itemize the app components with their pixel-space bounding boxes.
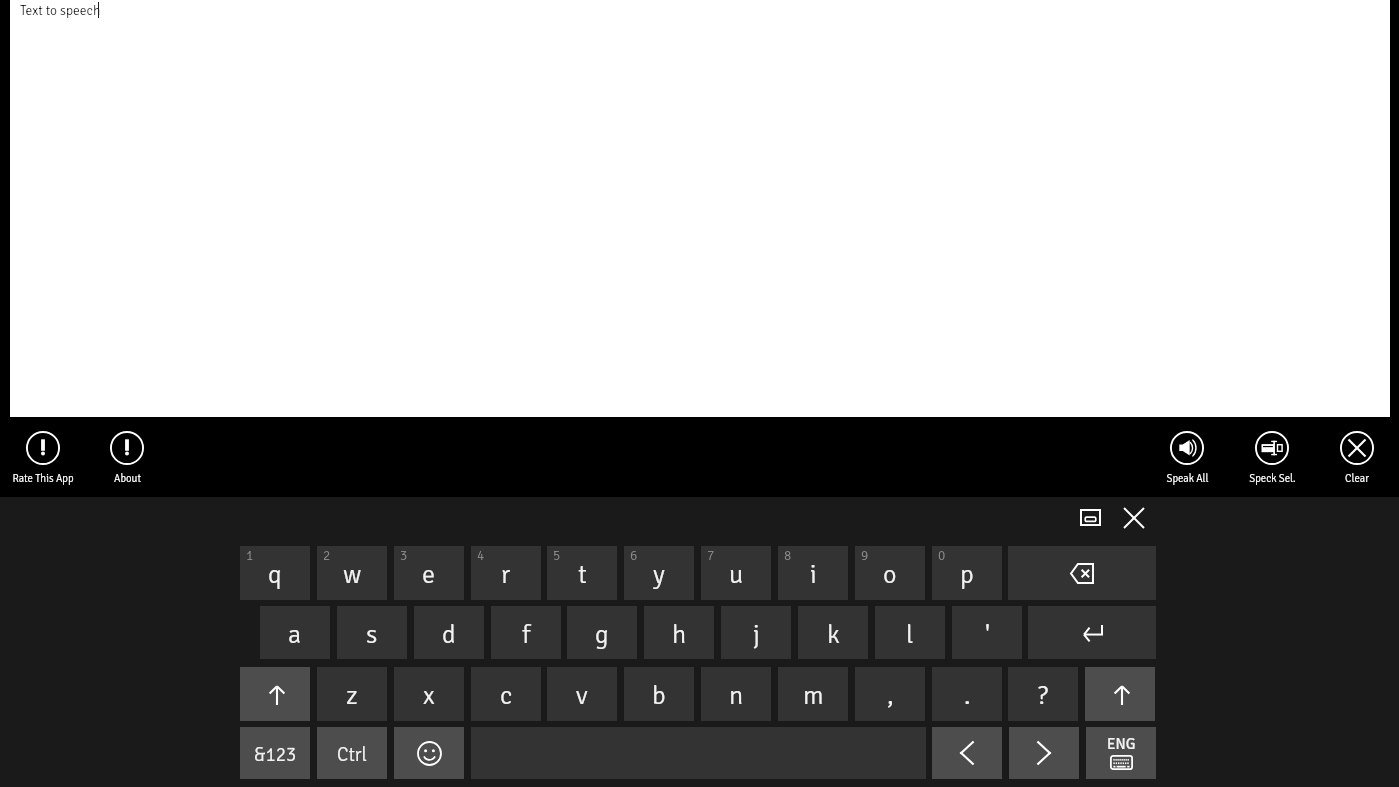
button[interactable]: &123 [240,727,310,779]
button[interactable]: s [337,606,407,659]
button[interactable]: z [317,667,387,721]
staticText: t [578,559,587,591]
button[interactable]: Backspace [1008,546,1156,600]
button[interactable]: Text to speech [10,0,1390,417]
staticText: y [653,559,665,591]
staticText: g [595,619,609,651]
staticText: s [366,619,378,651]
button[interactable]: . [932,667,1002,721]
staticText: f [522,619,531,651]
staticText: z [346,680,358,712]
button[interactable]: Speak Selection [1228,424,1316,488]
button[interactable]: Cursor left [932,727,1002,779]
button[interactable]: Clear [1313,424,1399,488]
staticText: 9 [861,547,869,564]
staticText: 7 [707,547,715,564]
staticText: v [576,680,588,712]
button[interactable]: Shift [240,667,310,721]
staticText: m [803,680,824,712]
button[interactable]: 8 [778,546,848,600]
staticText: 6 [630,547,638,564]
staticText: 4 [477,547,485,564]
staticText: e [422,559,436,591]
button[interactable]: Dock keyboard [1070,501,1110,533]
button[interactable]: ? [1008,667,1078,721]
staticText: c [500,680,513,712]
staticText: h [672,619,687,651]
staticText: n [729,680,744,712]
button[interactable]: ' [952,606,1022,659]
button[interactable]: Ctrl [317,727,387,779]
staticText: 2 [323,547,331,564]
button[interactable]: d [414,606,484,659]
staticText: About [114,472,141,485]
staticText: i [810,559,817,591]
button[interactable]: n [701,667,771,721]
button[interactable]: x [394,667,464,721]
button[interactable]: , [855,667,925,721]
staticText: 5 [553,547,561,564]
staticText: , [887,680,894,712]
button[interactable]: k [798,606,868,659]
button[interactable]: 7 [701,546,771,600]
button[interactable]: v [547,667,617,721]
button[interactable]: f [491,606,561,659]
button[interactable]: 0 [932,546,1002,600]
button[interactable]: m [778,667,848,721]
staticText: Speck Sel. [1249,472,1296,485]
button[interactable]: 4 [471,546,541,600]
staticText: ? [1038,680,1048,712]
button[interactable]: h [644,606,714,659]
staticText: Text to speech [20,2,101,19]
button[interactable]: Close keyboard [1114,502,1154,534]
staticText: d [442,619,456,651]
button[interactable]: Shift [1085,667,1155,721]
button[interactable]: Emoji [394,727,464,779]
button[interactable]: 5 [547,546,617,600]
button[interactable]: g [567,606,637,659]
staticText: b [652,680,666,712]
button[interactable]: c [471,667,541,721]
button[interactable]: 6 [624,546,694,600]
button[interactable]: a [260,606,330,659]
staticText: ENG [1107,735,1136,753]
staticText: Clear [1345,472,1369,485]
staticText: Ctrl [337,743,367,766]
button[interactable]: l [875,606,945,659]
button[interactable]: Speak All [1143,424,1231,488]
staticText: 1 [246,547,254,564]
button[interactable]: About [83,424,171,488]
staticText: o [883,559,897,591]
button[interactable]: Cursor right [1009,727,1079,779]
button[interactable]: Change language [1086,727,1156,779]
staticText: 0 [938,547,946,564]
staticText: 3 [400,547,408,564]
button[interactable]: 1 [240,546,310,600]
staticText: &123 [254,743,297,766]
staticText: l [906,619,914,651]
button[interactable]: 2 [317,546,387,600]
staticText: Speak All [1166,472,1209,485]
staticText: u [729,559,744,591]
staticText: x [423,680,435,712]
staticText: j [753,619,760,651]
staticText: a [288,619,302,651]
button[interactable]: 9 [855,546,925,600]
button[interactable]: Rate This App [0,424,87,488]
staticText: . [964,680,971,712]
staticText: Rate This App [12,472,74,485]
button[interactable]: j [721,606,791,659]
button[interactable]: Enter [1028,606,1156,659]
staticText: r [501,559,511,591]
staticText: p [960,559,974,591]
staticText: w [343,559,362,591]
button[interactable]: b [624,667,694,721]
button[interactable]: 3 [394,546,464,600]
staticText: k [827,619,840,651]
staticText: q [268,559,282,591]
staticText: ' [985,619,990,651]
staticText: 8 [784,547,792,564]
